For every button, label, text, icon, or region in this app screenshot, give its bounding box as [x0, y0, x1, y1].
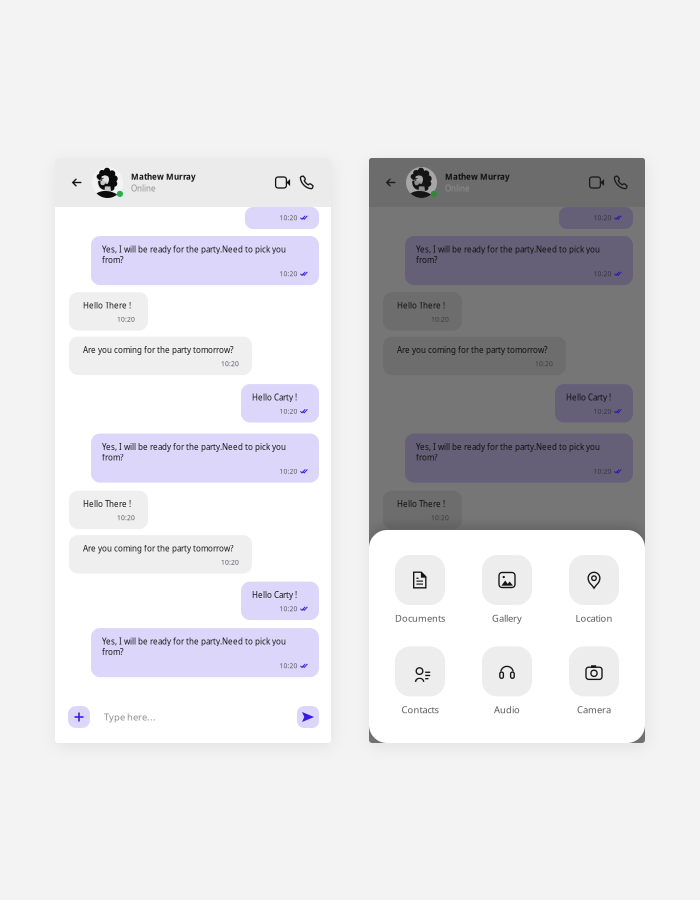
staticText: Mathew Murray [445, 171, 510, 182]
staticText: Hello There ! [397, 499, 445, 509]
staticText: Online [131, 183, 156, 194]
staticText: 10:20 [593, 661, 611, 670]
staticText: 10:20 [593, 467, 611, 476]
button[interactable]: Voice call [608, 170, 633, 194]
button[interactable]: Back [379, 169, 403, 195]
staticText: 10:20 [117, 315, 135, 324]
staticText: 10:20 [279, 269, 297, 278]
staticText: Hello There ! [83, 499, 131, 509]
staticText: Documents [395, 612, 445, 624]
staticText: Yes, I will be ready for the party.Need … [102, 244, 286, 265]
button[interactable]: Video call [582, 170, 608, 194]
staticText: 10:20 [279, 661, 297, 670]
staticText: Gallery [492, 612, 522, 624]
staticText: Yes, I will be ready for the party.Need … [416, 244, 600, 265]
button[interactable]: Voice call [294, 170, 319, 194]
staticText: Are you coming for the party tomorrow? [83, 543, 233, 554]
button[interactable]: Video call [268, 170, 294, 194]
button[interactable]: Gallery [471, 555, 543, 624]
button[interactable]: Contacts [384, 646, 456, 716]
staticText: Hello There ! [397, 300, 445, 311]
button[interactable]: Back [65, 169, 89, 195]
staticText: Yes, I will be ready for the party.Need … [102, 441, 286, 463]
staticText: Type here... [104, 711, 156, 723]
staticText: Online [445, 183, 470, 194]
staticText: 10:20 [535, 359, 553, 368]
staticText: 10:20 [117, 513, 135, 522]
staticText: Camera [577, 703, 611, 716]
staticText: 10:20 [221, 359, 239, 368]
button[interactable]: Add attachment [68, 706, 90, 728]
staticText: 10:20 [593, 213, 611, 222]
staticText: Hello Carty ! [566, 590, 611, 600]
staticText: 10:20 [221, 558, 239, 567]
staticText: Hello Carty ! [252, 590, 297, 600]
staticText: Contacts [401, 703, 438, 716]
staticText: Yes, I will be ready for the party.Need … [416, 441, 600, 463]
staticText: Hello Carty ! [252, 392, 297, 403]
button[interactable]: Location [558, 555, 630, 624]
staticText: Are you coming for the party tomorrow? [397, 345, 547, 355]
staticText: Yes, I will be ready for the party.Need … [416, 636, 600, 657]
staticText: Are you coming for the party tomorrow? [83, 345, 233, 355]
staticText: 10:20 [593, 269, 611, 278]
staticText: 10:20 [593, 604, 611, 613]
staticText: 10:20 [279, 467, 297, 476]
staticText: 10:20 [279, 604, 297, 613]
staticText: Mathew Murray [131, 171, 196, 182]
staticText: Audio [494, 703, 520, 716]
staticText: 10:20 [593, 407, 611, 416]
button[interactable]: Send [297, 706, 319, 728]
staticText: Location [575, 612, 612, 624]
staticText: 10:20 [279, 213, 297, 222]
staticText: Hello There ! [83, 300, 131, 311]
staticText: Yes, I will be ready for the party.Need … [102, 636, 286, 657]
staticText: 10:20 [431, 315, 449, 324]
staticText: Hello Carty ! [566, 392, 611, 403]
staticText: 10:20 [279, 407, 297, 416]
button[interactable]: Camera [558, 646, 630, 716]
button[interactable]: Audio [471, 646, 543, 716]
staticText: 10:20 [431, 513, 449, 522]
button[interactable]: Documents [384, 555, 456, 624]
